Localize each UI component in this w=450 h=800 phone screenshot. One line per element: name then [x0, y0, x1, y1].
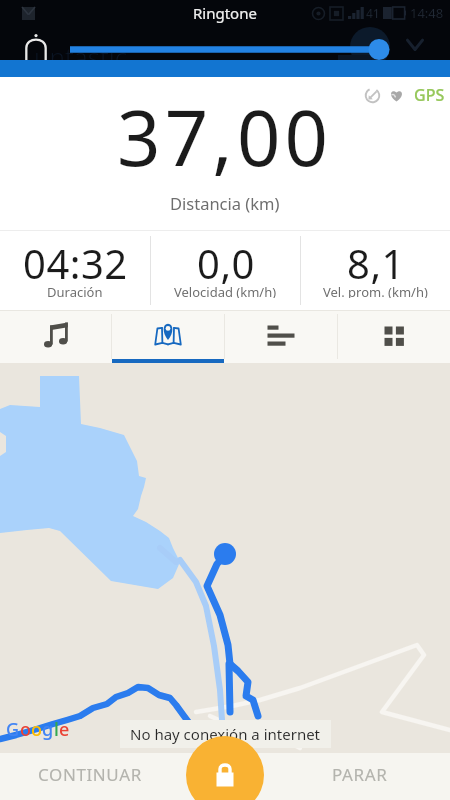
staticText: untastic — [34, 39, 128, 74]
staticText: No hay conexión a internet — [130, 724, 321, 744]
button[interactable]: Lock — [186, 736, 264, 800]
staticText: Ringtone — [193, 3, 257, 23]
staticText: G — [6, 717, 20, 742]
staticText: g — [42, 717, 54, 742]
button[interactable]: CONTINUAR — [0, 753, 180, 800]
button[interactable]: Music — [0, 310, 111, 363]
button[interactable]: More — [338, 310, 450, 363]
staticText: e — [59, 717, 70, 742]
staticText: Velocidad (km/h) — [174, 283, 277, 298]
staticText: Distancia (km) — [170, 192, 280, 214]
button[interactable]: Map — [112, 310, 224, 363]
staticText: PARAR — [332, 763, 388, 786]
staticText: 14:48 — [410, 4, 444, 22]
staticText: o — [20, 717, 31, 742]
staticText: Duración — [47, 283, 103, 298]
staticText: GPS — [414, 84, 445, 106]
staticText: CONTINUAR — [38, 763, 142, 786]
staticText: 37,00 — [117, 85, 333, 189]
staticText: 04:32 — [23, 236, 128, 290]
other: Ringtone volume — [25, 34, 47, 61]
button[interactable]: 8,1 — [301, 236, 450, 305]
staticText: o — [31, 717, 42, 742]
staticText: Vel. prom. (km/h) — [323, 283, 428, 298]
button[interactable]: 0,0 — [151, 236, 300, 305]
button[interactable]: Stats — [225, 310, 337, 363]
button[interactable]: 04:32 — [0, 236, 150, 305]
staticText: 8,1 — [347, 236, 405, 290]
other: Expand volume panel — [406, 38, 424, 51]
staticText: 41 — [366, 5, 380, 21]
button[interactable]: PARAR — [270, 753, 450, 800]
staticText: 0,0 — [197, 236, 255, 290]
staticText: l — [54, 717, 59, 742]
